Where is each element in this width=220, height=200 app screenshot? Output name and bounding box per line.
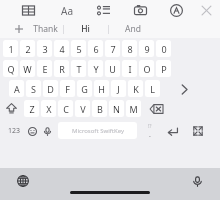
button[interactable]: M [126, 100, 141, 117]
staticText: O [143, 63, 151, 75]
staticText: B [97, 103, 103, 115]
staticText: 2 [25, 43, 31, 55]
button[interactable]: Enter [163, 122, 181, 140]
button[interactable]: W [20, 60, 35, 77]
staticText: Y [93, 63, 99, 75]
button[interactable]: X [41, 100, 56, 117]
button[interactable]: Voice input [40, 122, 54, 140]
button[interactable]: Camera [129, 0, 151, 20]
button[interactable]: J [111, 80, 126, 97]
staticText: !? [148, 123, 152, 130]
staticText: V [80, 103, 86, 115]
button[interactable]: Sticker [165, 0, 187, 20]
staticText: R [59, 63, 65, 75]
button[interactable]: Clipboard list [92, 0, 114, 20]
staticText: S [31, 83, 36, 95]
button[interactable]: K [128, 80, 143, 97]
staticText: 1 [8, 43, 14, 55]
staticText: I [128, 63, 132, 75]
staticText: T [76, 63, 82, 75]
staticText: Thank [33, 23, 58, 35]
button[interactable]: Emoji [24, 122, 40, 140]
button[interactable]: !? [143, 122, 157, 140]
button[interactable]: 4 [54, 40, 69, 57]
staticText: A [14, 83, 20, 95]
staticText: F [65, 83, 70, 95]
button[interactable]: L [145, 80, 160, 97]
staticText: 4 [59, 43, 65, 55]
button[interactable]: Grid [17, 0, 39, 20]
button[interactable]: T [71, 60, 86, 77]
button[interactable]: And [112, 20, 154, 38]
button[interactable]: Add [10, 20, 28, 38]
button[interactable]: A [9, 80, 24, 97]
button[interactable]: Language [13, 171, 33, 191]
button[interactable]: E [37, 60, 52, 77]
button[interactable]: Thank [24, 20, 66, 38]
staticText: J [117, 83, 120, 95]
staticText: Q [7, 63, 15, 75]
button[interactable]: 9 [139, 40, 154, 57]
button[interactable]: C [58, 100, 73, 117]
button[interactable]: Close [195, 0, 217, 20]
button[interactable]: G [77, 80, 92, 97]
staticText: L [150, 83, 155, 95]
button[interactable]: Shift [2, 100, 20, 117]
button[interactable]: 3 [37, 40, 52, 57]
staticText: 3 [42, 43, 48, 55]
staticText: 5 [76, 43, 82, 55]
button[interactable]: Microsoft SwiftKey [58, 122, 137, 139]
staticText: Aa [61, 4, 73, 17]
button[interactable]: 2 [20, 40, 35, 57]
button[interactable]: Dictate [187, 171, 207, 191]
staticText: 6 [93, 43, 99, 55]
staticText: 123 [8, 126, 21, 136]
button[interactable]: Y [88, 60, 103, 77]
button[interactable]: 123 [4, 122, 24, 140]
button[interactable]: N [109, 100, 124, 117]
staticText: Hi [81, 23, 90, 35]
button[interactable]: O [139, 60, 154, 77]
button[interactable]: 6 [88, 40, 103, 57]
staticText: Microsoft SwiftKey [72, 127, 124, 135]
staticText: 8 [127, 43, 133, 55]
staticText: C [63, 103, 69, 115]
button[interactable]: Z [24, 100, 39, 117]
staticText: 0 [161, 43, 167, 55]
staticText: W [23, 63, 32, 75]
staticText: K [133, 83, 139, 95]
button[interactable]: Backspace [146, 100, 166, 117]
staticText: 9 [144, 43, 150, 55]
button[interactable]: Next [176, 81, 192, 97]
button[interactable]: U [105, 60, 120, 77]
staticText: X [46, 103, 52, 115]
button[interactable]: Q [3, 60, 18, 77]
button[interactable]: Font size [55, 0, 77, 20]
button[interactable]: P [156, 60, 171, 77]
staticText: N [113, 103, 120, 115]
button[interactable]: I [122, 60, 137, 77]
button[interactable]: Resize keyboard [189, 122, 207, 140]
staticText: 7 [110, 43, 116, 55]
staticText: E [42, 63, 48, 75]
button[interactable]: 1 [3, 40, 18, 57]
staticText: U [109, 63, 116, 75]
button[interactable]: 0 [156, 40, 171, 57]
staticText: Z [29, 103, 35, 115]
button[interactable]: S [26, 80, 41, 97]
staticText: M [129, 103, 138, 115]
staticText: . [149, 130, 151, 140]
button[interactable]: Hi [64, 20, 106, 38]
button[interactable]: F [60, 80, 75, 97]
button[interactable]: 5 [71, 40, 86, 57]
button[interactable]: 7 [105, 40, 120, 57]
button[interactable]: B [92, 100, 107, 117]
staticText: And [125, 23, 141, 35]
button[interactable]: D [43, 80, 58, 97]
button[interactable]: 8 [122, 40, 137, 57]
button[interactable]: H [94, 80, 109, 97]
staticText: P [161, 63, 167, 75]
button[interactable]: R [54, 60, 69, 77]
button[interactable]: V [75, 100, 90, 117]
staticText: H [98, 83, 105, 95]
